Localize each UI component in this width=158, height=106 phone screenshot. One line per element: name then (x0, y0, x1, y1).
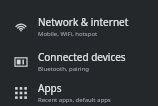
staticText: Recent apps, default apps (38, 96, 111, 104)
other: Network and internet (14, 20, 28, 34)
staticText: Mobile, WiFi, hotspot (38, 30, 98, 38)
staticText: Connected devices (38, 50, 126, 64)
other: Connected devices (14, 55, 28, 69)
staticText: Apps (38, 81, 62, 95)
button[interactable]: Apps (0, 79, 158, 106)
staticText: Network & internet (38, 15, 129, 29)
other: Apps (14, 86, 28, 100)
button[interactable]: Connected devices (0, 44, 158, 79)
button[interactable]: Network and internet (0, 9, 158, 44)
staticText: Bluetooth, pairing (38, 65, 90, 73)
